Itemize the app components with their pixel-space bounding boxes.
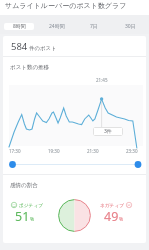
staticText: 584	[11, 40, 28, 53]
staticText: 感情の割合	[10, 182, 38, 189]
staticText: 51	[15, 208, 30, 225]
staticText: 49	[104, 208, 119, 225]
staticText: 19:30	[48, 148, 60, 154]
button[interactable]: 3件	[104, 128, 112, 135]
button[interactable]: ポジティブ	[11, 202, 43, 225]
staticText: %	[30, 216, 35, 223]
staticText: ポジティブ	[19, 202, 43, 208]
staticText: 21:45	[96, 77, 108, 83]
staticText: 8時間	[13, 23, 26, 30]
button[interactable]: 24時間	[42, 23, 71, 30]
staticText: 21:30	[87, 148, 99, 154]
button[interactable]: Time range slider	[3, 155, 146, 174]
button[interactable]: 30日	[116, 23, 145, 30]
staticText: 件のポスト	[29, 45, 57, 52]
staticText: 23:30	[126, 148, 138, 154]
staticText: 3件	[104, 128, 112, 135]
staticText: ネガティブ	[100, 202, 124, 208]
staticText: 7日	[90, 23, 98, 30]
button[interactable]: 7日	[79, 23, 108, 30]
staticText: 24時間	[49, 23, 65, 30]
staticText: ポスト数の推移	[10, 64, 50, 71]
staticText: サムライトルーバーのポスト数グラフ	[5, 1, 127, 10]
button[interactable]: 8時間	[4, 23, 34, 30]
button[interactable]: ネガティブ	[100, 202, 132, 225]
staticText: 17:30	[9, 148, 21, 154]
staticText: 30日	[125, 23, 136, 30]
staticText: %	[119, 216, 124, 223]
